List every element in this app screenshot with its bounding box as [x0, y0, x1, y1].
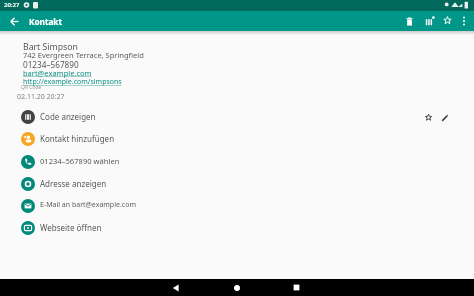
- staticText: 02.11.20 20:27: [17, 92, 65, 102]
- staticText: Bart Simpson: [23, 41, 78, 53]
- button[interactable]: 01234–567890 wählen: [0, 151, 474, 173]
- staticText: 20:27: [4, 1, 20, 9]
- staticText: Kontakt hinzufügen: [40, 133, 115, 144]
- button[interactable]: [288, 279, 305, 296]
- button[interactable]: Code anzeigen: [0, 106, 474, 128]
- button[interactable]: Kontakt hinzufügen: [0, 128, 474, 150]
- staticText: Kontakt: [29, 16, 62, 27]
- staticText: Adresse anzeigen: [40, 178, 107, 189]
- button[interactable]: [421, 110, 436, 125]
- button[interactable]: [401, 13, 417, 29]
- button[interactable]: [5, 12, 23, 30]
- button[interactable]: [437, 110, 452, 125]
- staticText: bart@example.com: [23, 68, 92, 78]
- staticText: Code anzeigen: [40, 111, 96, 122]
- button[interactable]: [457, 14, 470, 27]
- button[interactable]: bart@example.com: [23, 68, 92, 78]
- staticText: http://example.com/simpsons: [23, 77, 122, 87]
- button[interactable]: E-Mail an bart@example.com: [0, 195, 474, 217]
- button[interactable]: Webseite öffnen: [0, 217, 474, 239]
- button[interactable]: [422, 13, 438, 29]
- button[interactable]: [167, 279, 185, 296]
- button[interactable]: Adresse anzeigen: [0, 173, 474, 195]
- button[interactable]: [228, 279, 245, 296]
- button[interactable]: [440, 13, 455, 28]
- staticText: Webseite öffnen: [40, 222, 102, 233]
- button[interactable]: http://example.com/simpsons: [23, 77, 122, 87]
- staticText: 742 Evergreen Terrace, Springfield: [23, 50, 144, 60]
- staticText: E-Mail an bart@example.com: [40, 200, 136, 210]
- staticText: 01234–567890: [23, 59, 79, 70]
- staticText: QR Code: [21, 84, 42, 91]
- staticText: 01234–567890 wählen: [40, 156, 120, 166]
